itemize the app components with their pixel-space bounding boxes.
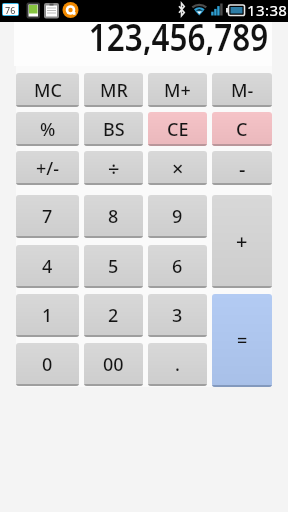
staticText: ÷ (108, 155, 120, 182)
button[interactable]: % (16, 112, 79, 146)
button[interactable]: MC (16, 73, 79, 107)
staticText: CE (167, 117, 189, 142)
staticText: 0 (42, 352, 53, 377)
staticText: 13:38 (247, 0, 288, 20)
button[interactable]: 00 (84, 343, 143, 386)
button[interactable]: BS (84, 112, 143, 146)
staticText: C (236, 117, 248, 142)
button[interactable]: CE (148, 112, 207, 146)
staticText: 6 (172, 254, 183, 279)
staticText: M- (231, 78, 254, 103)
staticText: 1 (42, 303, 53, 328)
button[interactable]: = (212, 294, 272, 387)
button[interactable]: ÷ (84, 151, 143, 185)
button[interactable]: . (148, 343, 207, 386)
staticText: 00 (103, 352, 124, 377)
button[interactable]: M- (212, 73, 272, 107)
staticText: × (172, 155, 184, 182)
button[interactable]: MR (84, 73, 143, 107)
button[interactable]: 7 (16, 195, 79, 238)
button[interactable]: C (212, 112, 272, 146)
button[interactable]: - (212, 151, 272, 185)
staticText: 123,456,789 (89, 11, 269, 55)
staticText: 76 (5, 4, 16, 15)
button[interactable]: 1 (16, 294, 79, 337)
staticText: 8 (108, 204, 119, 229)
staticText: 4 (42, 254, 53, 279)
staticText: = (237, 328, 248, 353)
staticText: 9 (172, 204, 183, 229)
staticText: +/- (36, 156, 60, 181)
staticText: + (236, 228, 248, 255)
staticText: M+ (164, 78, 191, 103)
button[interactable]: 4 (16, 245, 79, 288)
staticText: % (40, 117, 56, 142)
staticText: MR (100, 78, 128, 103)
staticText: BS (103, 117, 125, 142)
staticText: 3 (172, 303, 183, 328)
staticText: - (239, 155, 246, 182)
staticText: 5 (108, 254, 119, 279)
button[interactable]: 2 (84, 294, 143, 337)
staticText: . (175, 352, 180, 377)
button[interactable]: 6 (148, 245, 207, 288)
button[interactable]: 9 (148, 195, 207, 238)
button[interactable]: 3 (148, 294, 207, 337)
staticText: 2 (108, 303, 119, 328)
button[interactable]: + (212, 195, 272, 288)
button[interactable]: M+ (148, 73, 207, 107)
button[interactable]: × (148, 151, 207, 185)
button[interactable]: 5 (84, 245, 143, 288)
button[interactable]: 0 (16, 343, 79, 386)
staticText: MC (34, 78, 62, 103)
button[interactable]: +/- (16, 151, 79, 185)
staticText: 7 (42, 204, 53, 229)
button[interactable]: 8 (84, 195, 143, 238)
